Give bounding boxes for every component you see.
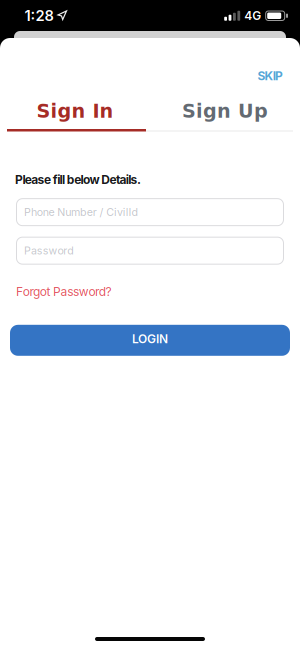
button[interactable]: LOGIN xyxy=(10,325,290,356)
staticText: 1:28 xyxy=(24,7,53,24)
staticText: SKIP xyxy=(257,69,283,83)
button[interactable]: Forgot Password? xyxy=(16,285,111,299)
button[interactable]: Sign Up xyxy=(150,99,300,123)
button[interactable]: Sign In xyxy=(0,99,150,123)
staticText: Phone Number / CivilId xyxy=(24,206,138,218)
staticText: Sign Up xyxy=(182,100,268,122)
button[interactable]: SKIP xyxy=(257,69,283,83)
staticText: Forgot Password? xyxy=(16,285,111,299)
button[interactable]: Password xyxy=(16,237,284,265)
staticText: Password xyxy=(24,244,74,257)
staticText: 4G xyxy=(244,9,261,23)
staticText: LOGIN xyxy=(132,332,168,346)
button[interactable]: Phone Number / CivilId xyxy=(16,198,284,226)
staticText: Sign In xyxy=(36,100,113,122)
staticText: Please fill below Details. xyxy=(15,172,141,187)
